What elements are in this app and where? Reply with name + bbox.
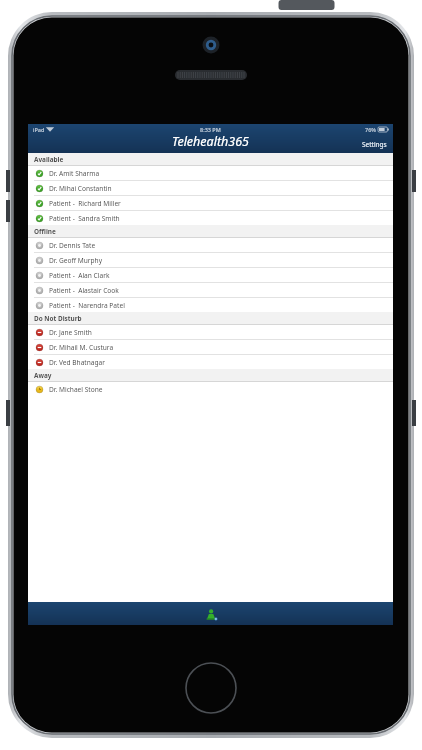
button[interactable]: Dr. Geoff Murphy	[28, 253, 393, 268]
staticText: Patient - Alan Clark	[49, 271, 110, 280]
button[interactable]: Dr. Michael Stone	[28, 382, 393, 396]
staticText: Dr. Jane Smith	[49, 328, 92, 337]
staticText: Dr. Mihail M. Custura	[49, 343, 114, 352]
staticText: Dr. Dennis Tate	[49, 241, 96, 250]
staticText: 76%	[365, 126, 376, 133]
button[interactable]: Dr. Jane Smith	[28, 325, 393, 340]
staticText: Patient - Richard Miller	[49, 199, 121, 208]
button[interactable]: Patient - Narendra Patel	[28, 298, 393, 312]
button[interactable]: Add contact	[201, 604, 221, 624]
staticText: Dr. Amit Sharma	[49, 169, 100, 178]
staticText: 8:33 PM	[200, 126, 221, 133]
button[interactable]: Dr. Mihail M. Custura	[28, 340, 393, 355]
button[interactable]: Patient - Alastair Cook	[28, 283, 393, 298]
staticText: Do Not Disturb	[34, 314, 82, 323]
staticText: Available	[34, 155, 64, 164]
staticText: Dr. Michael Stone	[49, 385, 103, 394]
staticText: Dr. Ved Bhatnagar	[49, 358, 105, 367]
button[interactable]: Patient - Richard Miller	[28, 196, 393, 211]
staticText: Offline	[34, 227, 56, 236]
staticText: Dr. Geoff Murphy	[49, 256, 102, 265]
button[interactable]: Settings	[362, 140, 393, 153]
staticText: Telehealth365	[172, 133, 249, 150]
button[interactable]: Dr. Dennis Tate	[28, 238, 393, 253]
button[interactable]: Dr. Ved Bhatnagar	[28, 355, 393, 369]
button[interactable]: Dr. Mihai Constantin	[28, 181, 393, 196]
button[interactable]: Patient - Sandra Smith	[28, 211, 393, 225]
staticText: Dr. Mihai Constantin	[49, 184, 112, 193]
button[interactable]: Patient - Alan Clark	[28, 268, 393, 283]
staticText: Patient - Narendra Patel	[49, 301, 125, 310]
staticText: iPad	[33, 126, 45, 133]
staticText: Away	[34, 371, 52, 380]
staticText: Patient - Sandra Smith	[49, 214, 120, 223]
staticText: Settings	[362, 140, 387, 149]
button[interactable]: Dr. Amit Sharma	[28, 166, 393, 181]
staticText: Patient - Alastair Cook	[49, 286, 119, 295]
